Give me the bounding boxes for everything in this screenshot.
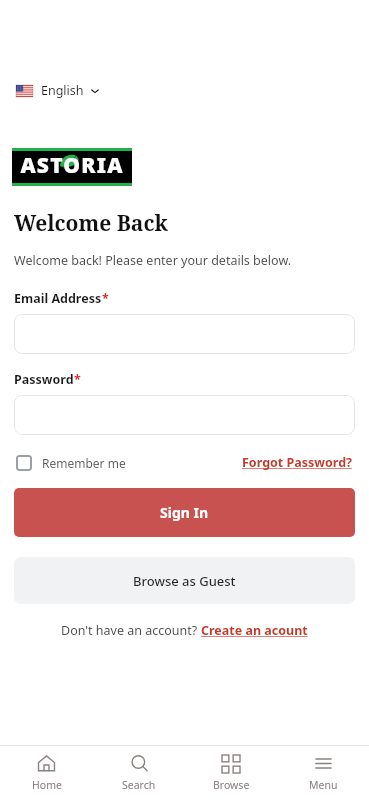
button[interactable]: Browse [185, 746, 277, 800]
other: Home [37, 754, 56, 773]
button[interactable]: Search [93, 746, 185, 800]
staticText: * [74, 371, 81, 388]
staticText: Sign In [160, 503, 209, 522]
staticText: Welcome Back [14, 209, 168, 238]
button[interactable]: Create an acount [201, 622, 308, 639]
staticText: Browse [213, 778, 250, 792]
button[interactable]: Sign In [14, 488, 355, 537]
button[interactable]: English [14, 78, 102, 103]
button[interactable]: Menu [277, 746, 369, 800]
other: Menu [314, 754, 333, 773]
staticText: Email Address [14, 290, 102, 307]
button[interactable]: Home [0, 746, 93, 800]
staticText: Menu [309, 778, 338, 792]
staticText: Forgot Password? [242, 454, 353, 471]
staticText: Search [122, 778, 156, 792]
button[interactable]: Remember me [14, 453, 128, 473]
staticText: * [102, 290, 109, 307]
other: Browse [222, 755, 240, 773]
staticText: Browse as Guest [133, 572, 236, 590]
button[interactable]: ASTORIA [12, 151, 132, 183]
button[interactable] [14, 314, 355, 354]
button[interactable] [14, 395, 355, 435]
staticText: Password [14, 371, 74, 388]
other: Search [130, 754, 149, 773]
staticText: ASTORIA [20, 151, 124, 180]
staticText: Remember me [42, 455, 126, 471]
button[interactable]: Browse as Guest [14, 557, 355, 604]
button[interactable]: Forgot Password? [240, 452, 355, 473]
staticText: Welcome back! Please enter your details … [14, 252, 292, 269]
staticText: Create an acount [201, 622, 308, 639]
staticText: Don't have an account? [61, 622, 201, 639]
staticText: Home [32, 778, 62, 792]
staticText: English [41, 82, 84, 99]
